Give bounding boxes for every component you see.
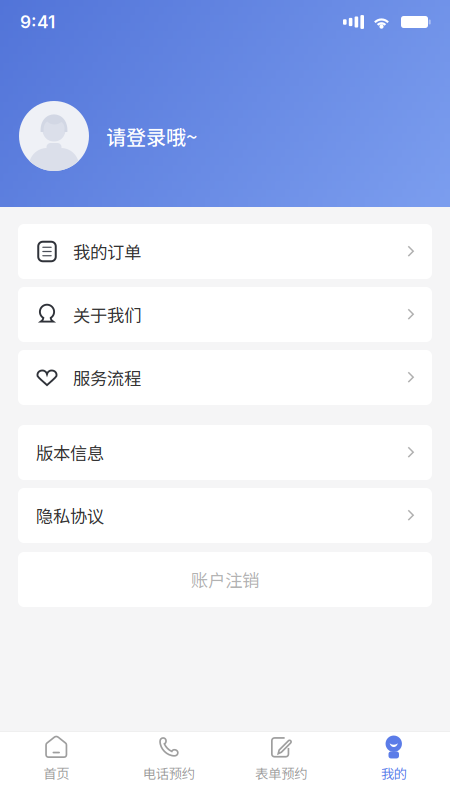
staticText: 电话预约 bbox=[143, 763, 195, 783]
staticText: 请登录哦~ bbox=[106, 121, 197, 150]
button[interactable]: 我的 bbox=[337, 732, 450, 786]
staticText: 关于我们 bbox=[73, 302, 141, 327]
staticText: 账户注销 bbox=[191, 567, 259, 592]
staticText: 隐私协议 bbox=[36, 503, 104, 528]
button[interactable]: 电话预约 bbox=[112, 732, 225, 786]
button[interactable]: 首页 bbox=[0, 732, 112, 786]
button[interactable]: 服务流程 bbox=[18, 350, 432, 405]
button[interactable]: 账户注销 bbox=[18, 552, 432, 607]
staticText: 9:41 bbox=[20, 11, 55, 32]
button[interactable]: 版本信息 bbox=[18, 425, 432, 480]
button[interactable]: 隐私协议 bbox=[18, 488, 432, 543]
staticText: 我的 bbox=[381, 763, 407, 783]
button[interactable]: 关于我们 bbox=[18, 287, 432, 342]
button[interactable]: 我的订单 bbox=[18, 224, 432, 279]
staticText: 表单预约 bbox=[255, 763, 307, 783]
button[interactable]: 表单预约 bbox=[225, 732, 337, 786]
staticText: 版本信息 bbox=[36, 440, 104, 465]
staticText: 服务流程 bbox=[73, 365, 141, 390]
staticText: 首页 bbox=[43, 763, 69, 783]
staticText: 我的订单 bbox=[73, 239, 141, 264]
